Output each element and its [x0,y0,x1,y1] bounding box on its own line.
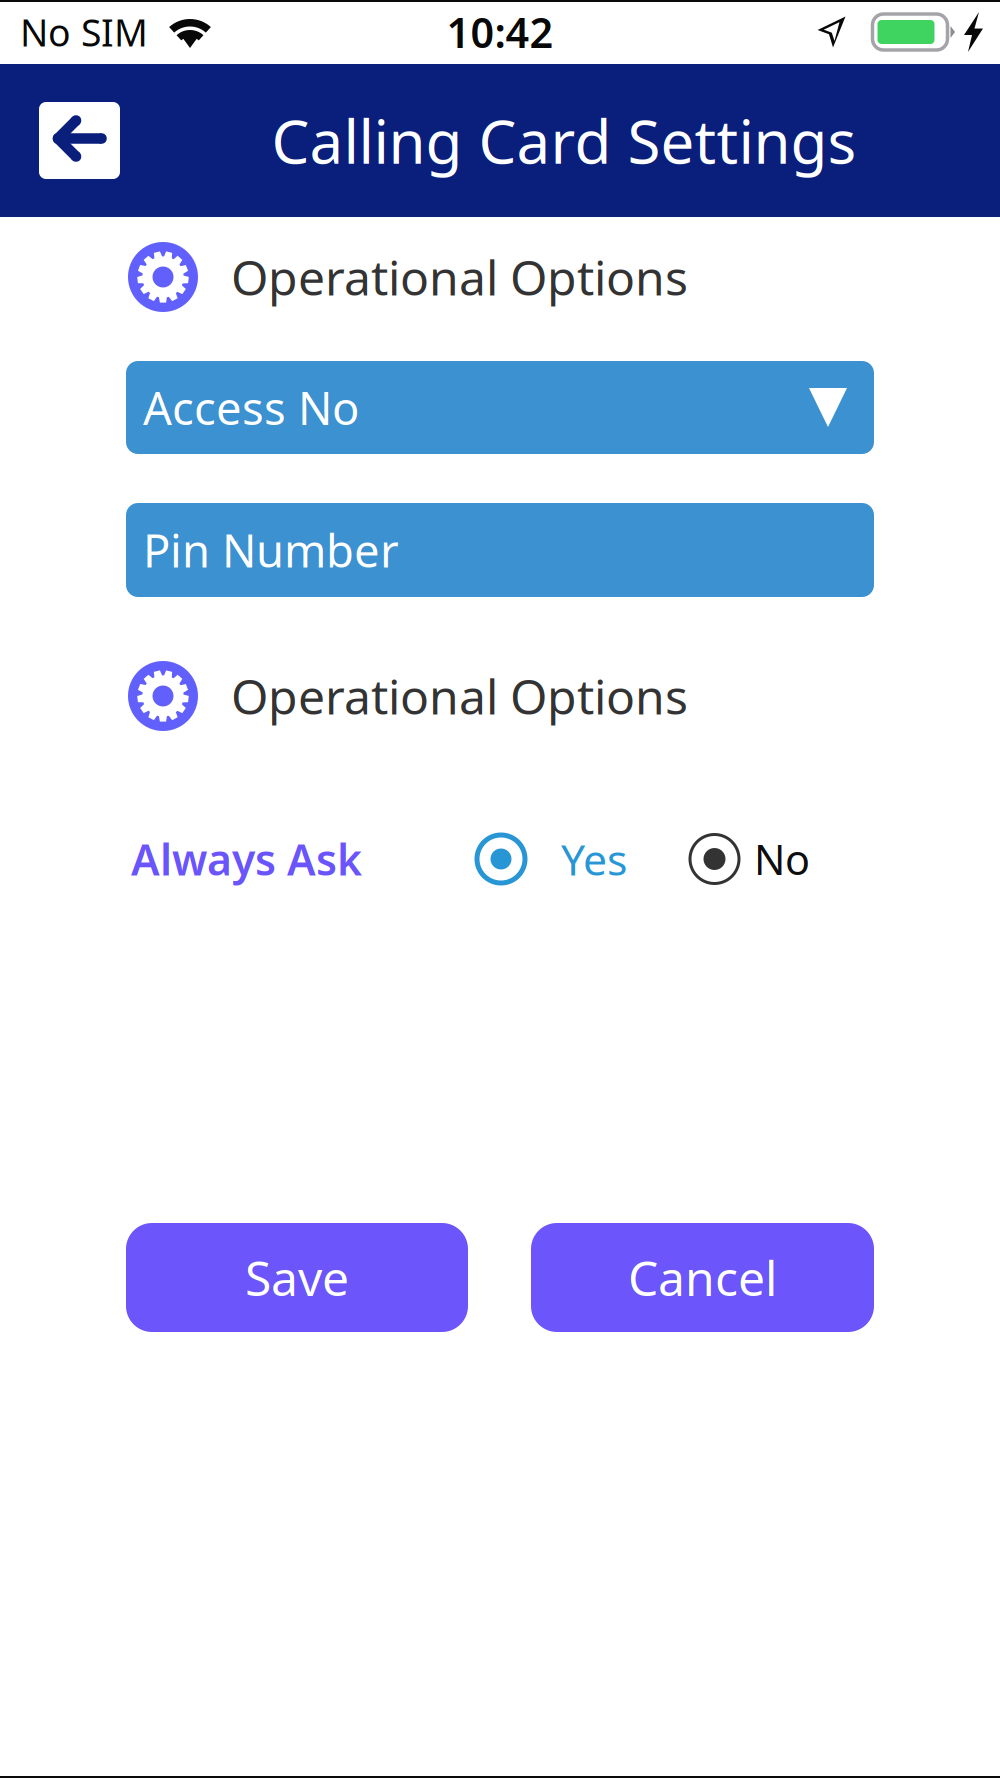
staticText: Operational Options [231,245,688,309]
button[interactable]: Access No [126,361,874,454]
button[interactable]: Save [126,1223,468,1332]
staticText: Operational Options [231,664,688,728]
staticText: Access No [143,377,359,438]
staticText: No SIM [20,7,148,57]
button[interactable]: Cancel [531,1223,874,1332]
staticText: 10:42 [446,5,553,59]
button[interactable]: Pin Number [126,503,874,597]
button[interactable]: Back [39,102,120,179]
staticText: No [754,832,810,886]
staticText: Calling Card Settings [271,101,856,180]
staticText: Cancel [628,1246,777,1309]
staticText: Pin Number [143,520,399,580]
button[interactable]: No [690,832,810,886]
button[interactable]: Yes [477,831,627,887]
staticText: Save [245,1246,349,1309]
staticText: Always Ask [131,831,362,887]
staticText: Yes [561,831,627,887]
